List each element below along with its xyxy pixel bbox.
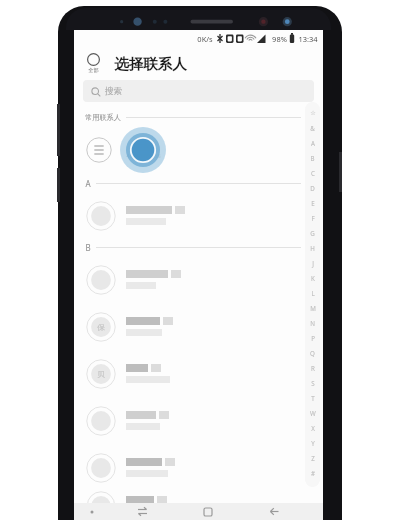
staticText: 常用联系人	[85, 113, 121, 122]
staticText: 保	[97, 323, 105, 332]
staticText: W	[310, 409, 316, 417]
button[interactable]	[74, 256, 323, 303]
button[interactable]: 主屏幕	[175, 503, 241, 520]
staticText: ☆	[310, 109, 316, 116]
staticText: S	[311, 379, 315, 387]
staticText: 13:34	[298, 34, 318, 44]
button[interactable]: 搜索	[83, 80, 314, 102]
staticText: 98%	[272, 34, 287, 44]
staticText: 选择联系人	[114, 55, 187, 73]
button[interactable]: 贝	[74, 350, 323, 397]
staticText: #	[311, 469, 315, 477]
staticText: Z	[311, 454, 315, 462]
staticText: K	[311, 274, 315, 282]
button[interactable]	[74, 444, 323, 491]
button[interactable]: 最近任务	[109, 503, 175, 520]
staticText: L	[311, 289, 315, 297]
staticText: B	[85, 242, 91, 253]
staticText: M	[310, 304, 316, 312]
button[interactable]: 全部	[85, 51, 102, 76]
staticText: H	[310, 244, 315, 252]
staticText: Y	[311, 439, 315, 447]
button[interactable]: 字母索引	[305, 102, 320, 487]
button[interactable]: 保	[74, 303, 323, 350]
staticText: N	[310, 319, 315, 327]
staticText: 全部	[88, 67, 99, 74]
button[interactable]: 三星	[120, 127, 166, 173]
button[interactable]	[74, 192, 323, 239]
staticText: 0K/s	[197, 34, 213, 44]
staticText: B	[310, 154, 315, 162]
staticText: C	[311, 169, 315, 177]
staticText: R	[311, 364, 315, 372]
staticText: D	[310, 184, 315, 192]
staticText: E	[311, 199, 315, 207]
staticText: A	[85, 178, 91, 189]
staticText: Q	[310, 349, 315, 357]
staticText: G	[310, 229, 315, 237]
staticText: A	[311, 139, 315, 147]
staticText: F	[311, 214, 315, 222]
staticText: X	[311, 424, 315, 432]
button[interactable]	[74, 397, 323, 444]
button[interactable]: 返回	[241, 503, 307, 520]
staticText: &	[310, 124, 315, 132]
staticText: P	[311, 334, 315, 342]
staticText: 搜索	[105, 86, 122, 97]
button[interactable]	[74, 491, 323, 520]
button[interactable]: 更多	[86, 137, 112, 163]
staticText: 4008105858	[126, 152, 161, 160]
staticText: J	[312, 259, 314, 267]
staticText: 贝	[97, 370, 105, 379]
staticText: T	[311, 394, 315, 402]
